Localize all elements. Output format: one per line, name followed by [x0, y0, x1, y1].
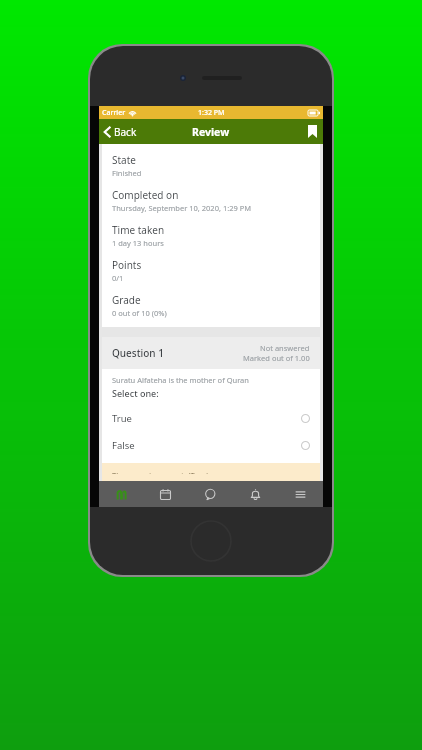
button[interactable]: Bookmark: [302, 119, 323, 144]
staticText: Not answered: [260, 343, 310, 353]
staticText: State: [112, 153, 136, 167]
button[interactable]: Grade: [102, 288, 320, 323]
staticText: Marked out of 1.00: [243, 353, 310, 363]
staticText: 0/1: [112, 273, 124, 283]
staticText: False: [112, 439, 301, 452]
staticText: Carrier: [102, 108, 126, 118]
button[interactable]: More: [278, 481, 323, 507]
button[interactable]: Notifications: [233, 481, 278, 507]
staticText: Review: [192, 125, 230, 139]
staticText: The correct answer is 'True'.: [112, 470, 210, 474]
staticText: Grade: [112, 293, 141, 307]
staticText: Finished: [112, 168, 142, 178]
staticText: Select one:: [112, 387, 159, 399]
button[interactable]: State: [102, 148, 320, 183]
button[interactable]: Back: [99, 119, 142, 144]
button[interactable]: True: [102, 405, 320, 432]
staticText: Time taken: [112, 223, 165, 237]
staticText: 0 out of 10 (0%): [112, 308, 167, 318]
staticText: Back: [114, 125, 137, 139]
staticText: Completed on: [112, 188, 179, 202]
staticText: Question 1: [112, 346, 243, 360]
staticText: Points: [112, 258, 142, 272]
staticText: True: [112, 412, 301, 425]
button[interactable]: Time taken: [102, 218, 320, 253]
button[interactable]: Points: [102, 253, 320, 288]
staticText: Suratu Alfateha is the mother of Quran: [112, 375, 249, 385]
button[interactable]: Completed on: [102, 183, 320, 218]
button[interactable]: Calendar: [143, 481, 188, 507]
button[interactable]: Messages: [188, 481, 233, 507]
button[interactable]: False: [102, 432, 320, 459]
button[interactable]: Home: [99, 481, 143, 507]
staticText: 1 day 13 hours: [112, 238, 164, 248]
staticText: 1:32 PM: [198, 108, 225, 118]
staticText: Thursday, September 10, 2020, 1:29 PM: [112, 203, 252, 213]
